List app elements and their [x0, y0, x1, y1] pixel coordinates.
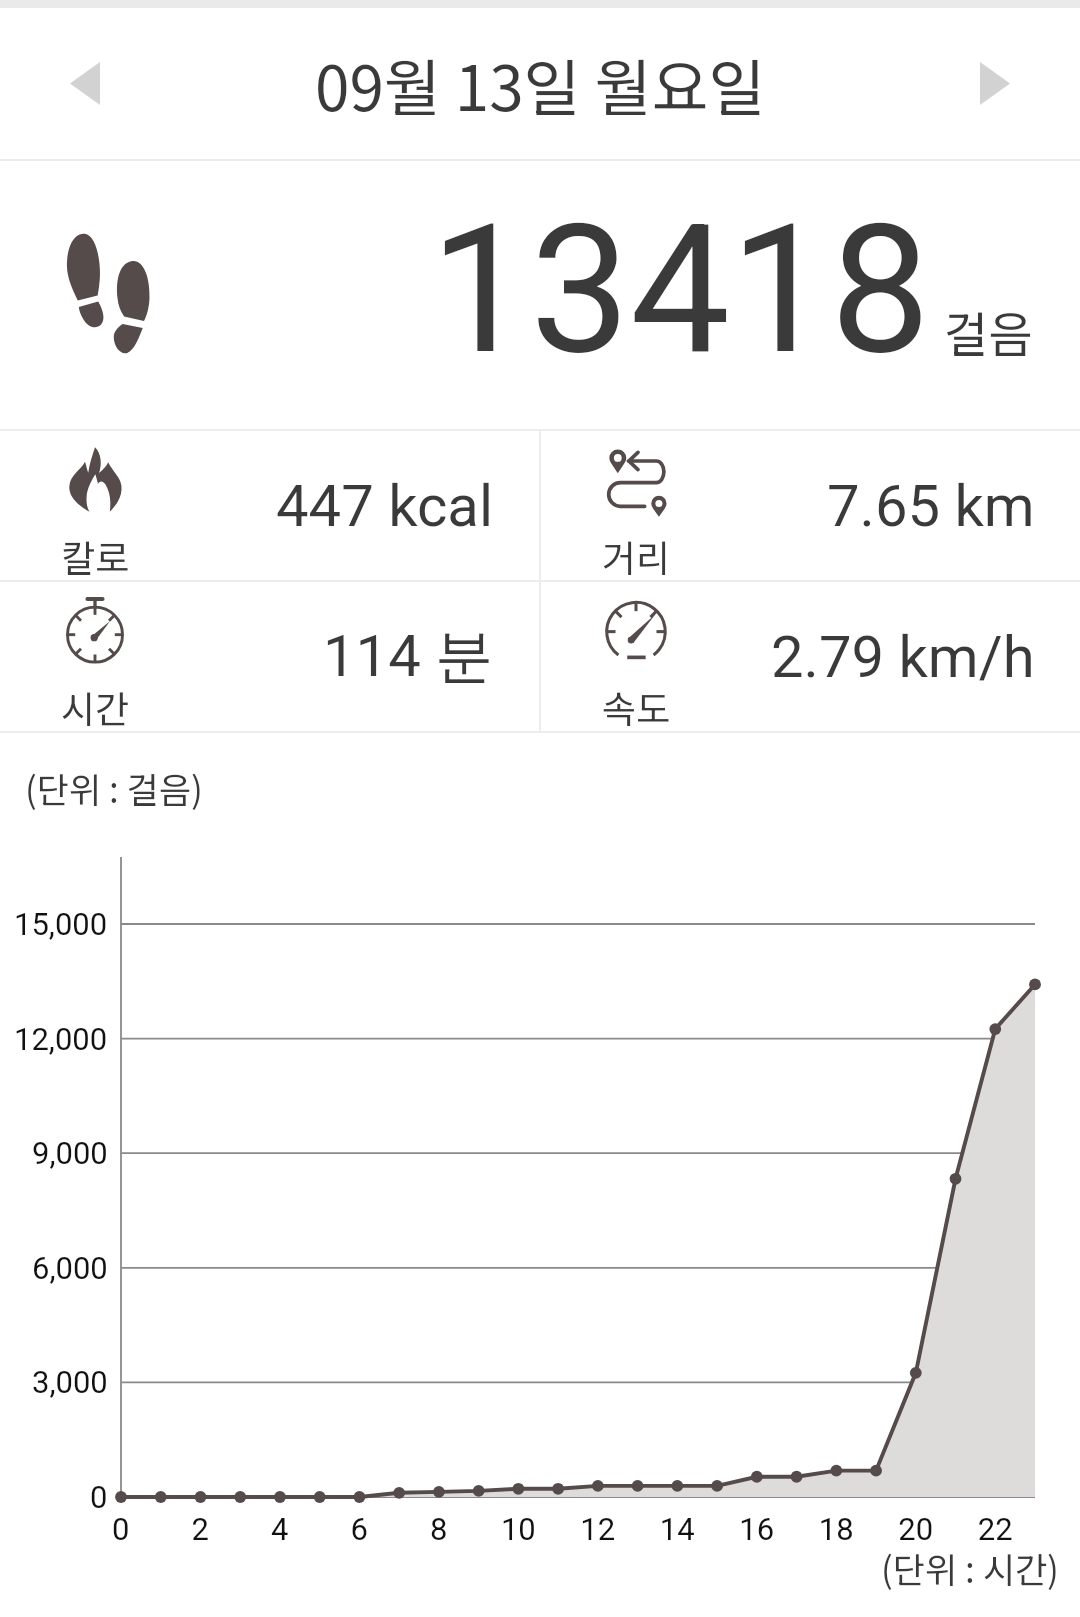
button[interactable]: 속도 — [541, 582, 1080, 731]
button[interactable]: Previous day — [0, 8, 170, 159]
staticText: 거리 — [602, 529, 671, 580]
button[interactable]: 13418 — [0, 161, 1080, 429]
staticText: (단위 : 걸음) — [25, 762, 203, 813]
staticText: (단위 : 시간) — [881, 1542, 1059, 1593]
staticText: 걸음 — [944, 296, 1033, 366]
staticText: 13418 — [430, 186, 931, 395]
staticText: 시간 — [61, 680, 130, 731]
staticText: 447 kcal — [276, 472, 494, 540]
button[interactable]: Next day — [910, 8, 1080, 159]
staticText: 09월 13일 월요일 — [315, 39, 766, 129]
staticText: 칼로 — [61, 529, 130, 580]
button[interactable]: 시간 — [0, 582, 539, 731]
staticText: 114 분 — [323, 620, 494, 693]
staticText: 7.65 km — [827, 472, 1035, 540]
button[interactable]: 거리 — [541, 431, 1080, 580]
staticText: 속도 — [602, 680, 671, 731]
staticText: 2.79 km/h — [771, 623, 1035, 691]
button[interactable]: 칼로 — [0, 431, 539, 580]
